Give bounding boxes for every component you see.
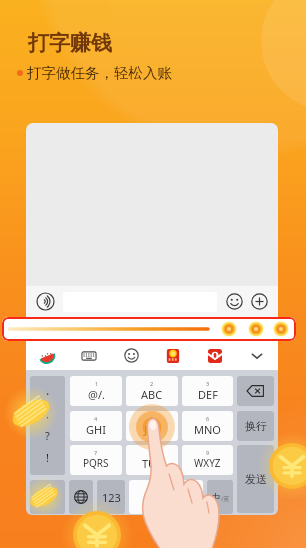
staticText: WXYZ bbox=[194, 456, 221, 470]
staticText: 9 bbox=[206, 449, 210, 456]
staticText: 5 bbox=[150, 415, 154, 422]
button[interactable]: del bbox=[237, 376, 274, 406]
staticText: 1 bbox=[95, 380, 99, 387]
staticText: 发送 bbox=[245, 472, 267, 486]
button[interactable]: @/. bbox=[70, 376, 122, 406]
staticText: ? bbox=[45, 428, 50, 443]
button[interactable]: Mail envelope bbox=[194, 341, 236, 370]
button[interactable]: 符 bbox=[30, 480, 65, 514]
staticText: PQRS bbox=[83, 456, 109, 470]
staticText: 7 bbox=[94, 449, 98, 456]
staticText: DEF bbox=[198, 387, 218, 402]
staticText: 符 bbox=[42, 490, 53, 504]
button[interactable]: · bbox=[30, 376, 65, 475]
button[interactable]: Collapse bbox=[236, 341, 278, 370]
button[interactable]: Voice input bbox=[36, 292, 55, 311]
staticText: 打字赚钱 bbox=[28, 30, 112, 56]
button[interactable]: TUV bbox=[126, 445, 178, 475]
staticText: /英 bbox=[221, 495, 230, 503]
button[interactable]: Emoji bbox=[226, 293, 243, 310]
staticText: 123 bbox=[102, 490, 121, 505]
staticText: 4 bbox=[94, 415, 98, 422]
staticText: · bbox=[46, 386, 50, 402]
staticText: JKL bbox=[144, 422, 160, 437]
button[interactable]: globe bbox=[69, 480, 93, 514]
button[interactable]: JKL bbox=[126, 411, 178, 441]
button[interactable]: DEF bbox=[182, 376, 233, 406]
button[interactable]: 中 bbox=[207, 480, 233, 514]
staticText: 打字做任务，轻松入账 bbox=[27, 64, 172, 82]
button[interactable]: 发送 bbox=[237, 445, 274, 513]
button[interactable]: ABC bbox=[126, 376, 178, 406]
staticText: 3 bbox=[206, 380, 210, 387]
staticText: ABC bbox=[141, 387, 163, 402]
staticText: TUV bbox=[142, 456, 163, 471]
button[interactable]: WXYZ bbox=[182, 445, 233, 475]
staticText: ! bbox=[46, 450, 49, 465]
staticText: @/. bbox=[88, 387, 105, 402]
button[interactable]: key bbox=[129, 480, 203, 514]
staticText: 换行 bbox=[245, 419, 267, 433]
staticText: ， bbox=[43, 409, 52, 420]
button[interactable]: Watermelon sticker bbox=[26, 341, 68, 370]
staticText: 6 bbox=[206, 415, 210, 422]
button[interactable]: Add more bbox=[251, 293, 268, 310]
staticText: 中 bbox=[211, 491, 221, 504]
button[interactable]: 123 bbox=[97, 480, 125, 514]
button[interactable]: Typing reward progress bbox=[2, 317, 296, 341]
button[interactable]: MNO bbox=[182, 411, 233, 441]
button[interactable]: Emoji bbox=[110, 341, 152, 370]
button[interactable]: GHI bbox=[70, 411, 122, 441]
staticText: 2 bbox=[150, 380, 154, 387]
button[interactable]: PQRS bbox=[70, 445, 122, 475]
button[interactable]: 换行 bbox=[237, 411, 274, 441]
button[interactable]: Red packet bbox=[152, 341, 194, 370]
staticText: MNO bbox=[194, 422, 221, 437]
staticText: GHI bbox=[86, 422, 106, 437]
button[interactable]: Keyboard bbox=[68, 341, 110, 370]
